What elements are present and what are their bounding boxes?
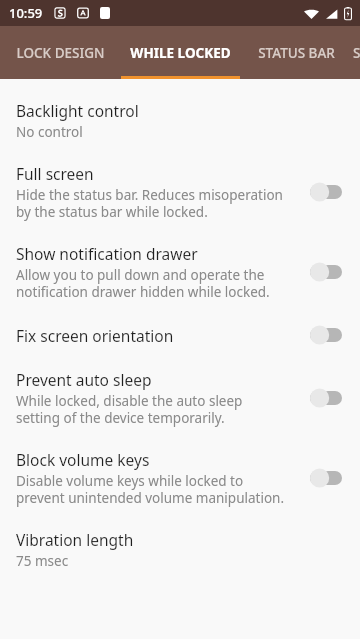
- button[interactable]: S: [353, 26, 360, 79]
- staticText: While locked, disable the auto sleep set…: [16, 392, 243, 427]
- button[interactable]: Toggle, off: [306, 260, 346, 284]
- button[interactable]: STATUS BAR: [240, 26, 353, 79]
- staticText: Backlight control: [16, 100, 139, 121]
- staticText: Hide the status bar. Reduces misoperatio…: [16, 186, 283, 221]
- button[interactable]: Full screen: [0, 152, 360, 232]
- button[interactable]: Show notification drawer: [0, 232, 360, 312]
- staticText: WHILE LOCKED: [130, 44, 231, 62]
- staticText: LOCK DESIGN: [16, 44, 105, 62]
- staticText: Block volume keys: [16, 449, 150, 470]
- button[interactable]: Toggle, off: [306, 466, 346, 490]
- staticText: Fix screen orientation: [16, 325, 174, 346]
- button[interactable]: Fix screen orientation: [0, 312, 360, 358]
- button[interactable]: Vibration length: [0, 518, 360, 581]
- staticText: No control: [16, 123, 83, 141]
- staticText: 10:59: [9, 4, 43, 22]
- staticText: S: [353, 44, 360, 62]
- button[interactable]: Block volume keys: [0, 438, 360, 518]
- staticText: Show notification drawer: [16, 243, 198, 264]
- staticText: Allow you to pull down and operate the n…: [16, 266, 270, 301]
- staticText: Full screen: [16, 163, 94, 184]
- staticText: Vibration length: [16, 529, 134, 550]
- staticText: Disable volume keys while locked to prev…: [16, 472, 285, 507]
- staticText: Prevent auto sleep: [16, 369, 152, 390]
- staticText: STATUS BAR: [258, 44, 335, 62]
- button[interactable]: LOCK DESIGN: [0, 26, 121, 79]
- button[interactable]: Prevent auto sleep: [0, 358, 360, 438]
- button[interactable]: WHILE LOCKED: [121, 26, 240, 79]
- staticText: 75 msec: [16, 552, 69, 570]
- button[interactable]: Toggle, off: [306, 323, 346, 347]
- button[interactable]: Toggle, off: [306, 180, 346, 204]
- button[interactable]: Backlight control: [0, 89, 360, 152]
- button[interactable]: Toggle, off: [306, 386, 346, 410]
